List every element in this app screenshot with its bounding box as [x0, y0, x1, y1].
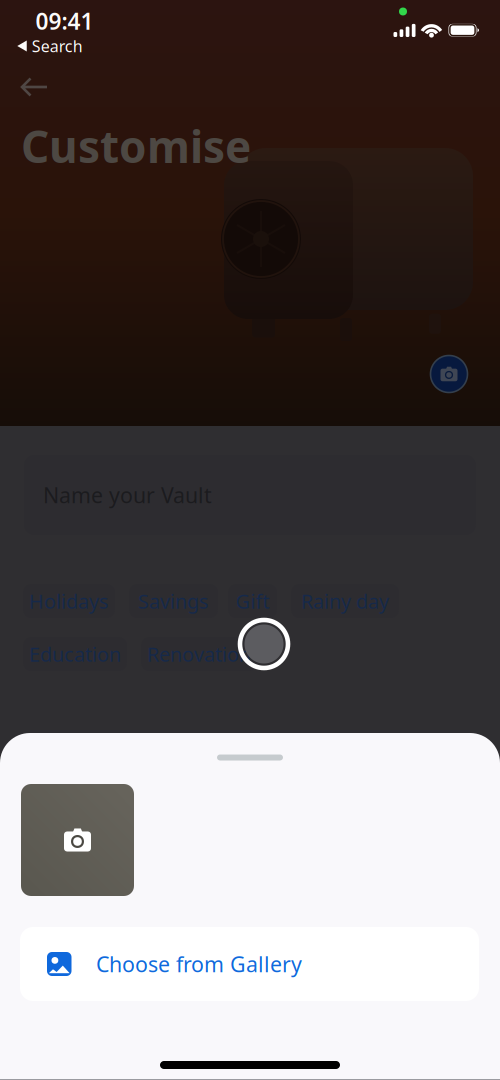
button[interactable]: Back [11, 67, 58, 106]
button[interactable]: Renovation [141, 637, 257, 671]
button[interactable]: Rainy day [291, 584, 399, 618]
staticText: Name your Vault [43, 481, 212, 509]
staticText: Education [29, 641, 121, 667]
button[interactable]: Take photo [21, 784, 134, 896]
staticText: Search [32, 35, 83, 57]
button[interactable]: Gift [228, 584, 277, 618]
staticText: Customise [21, 117, 251, 175]
staticText: Rainy day [301, 588, 389, 614]
staticText: Holidays [29, 588, 109, 614]
button[interactable]: Savings [129, 584, 218, 618]
staticText: Renovation [147, 641, 251, 667]
staticText: 09:41 [35, 6, 93, 36]
button[interactable]: Choose from Gallery [20, 927, 479, 1001]
staticText: Choose from Gallery [96, 950, 302, 978]
button[interactable]: Search [17, 31, 83, 61]
button[interactable]: Holidays [23, 584, 115, 618]
button[interactable]: Education [23, 637, 127, 671]
staticText: Gift [235, 588, 269, 614]
staticText: Savings [138, 588, 209, 614]
button[interactable]: Change cover photo [427, 352, 471, 396]
